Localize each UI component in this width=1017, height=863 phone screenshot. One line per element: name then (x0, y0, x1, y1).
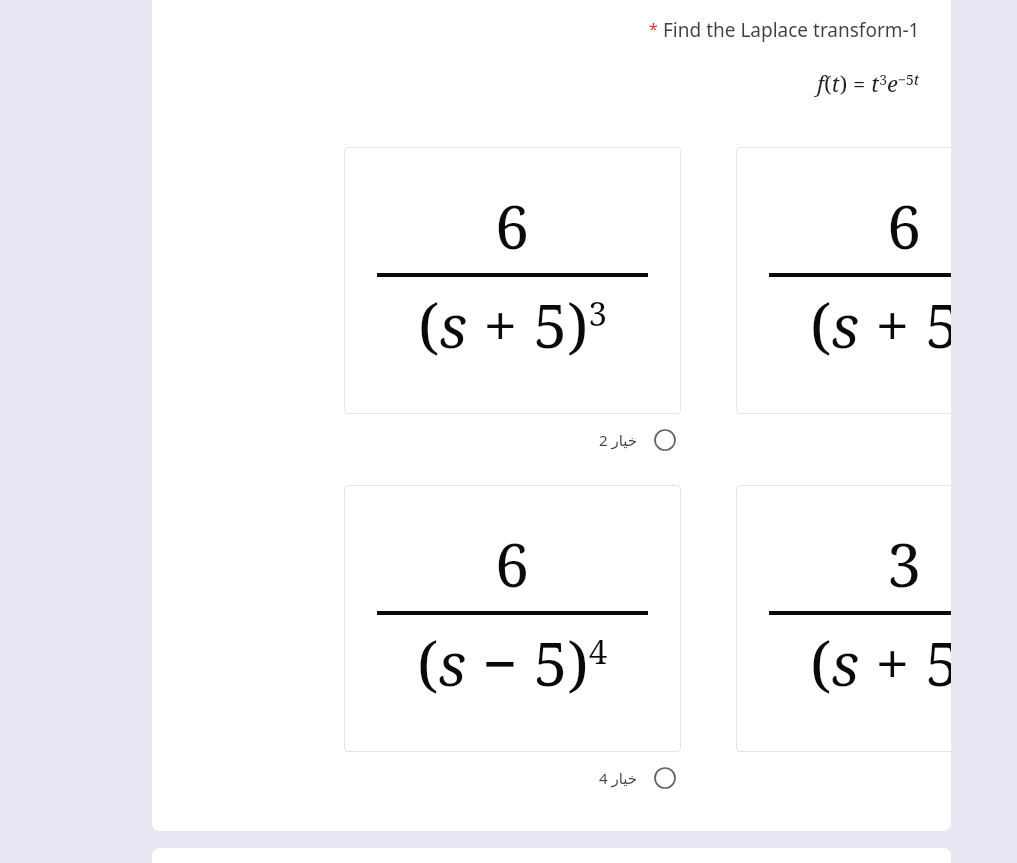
staticText: خيار 4 (599, 768, 638, 788)
staticText: 6 (495, 522, 530, 605)
staticText: * (649, 18, 658, 40)
button[interactable]: 6 (736, 147, 951, 414)
staticText: (s + 5)3 (810, 621, 951, 704)
staticText: 6 (495, 184, 530, 267)
button[interactable]: خيار 4 (344, 763, 681, 793)
staticText: 3 (887, 522, 922, 605)
button[interactable]: خيار 2 (344, 425, 681, 455)
staticText: (s + 5)3 (418, 283, 607, 366)
staticText: (s + 5)4 (810, 283, 951, 366)
staticText: (s − 5)4 (417, 621, 608, 704)
button[interactable]: 6 (344, 485, 681, 752)
other: Select خيار 4 (650, 763, 680, 793)
staticText: Find the Laplace transform-1 (663, 17, 920, 43)
staticText: خيار 2 (599, 430, 638, 450)
button[interactable]: 3 (736, 485, 951, 752)
staticText: 6 (887, 184, 922, 267)
button[interactable]: 6 (344, 147, 681, 414)
other: Select خيار 2 (650, 425, 680, 455)
staticText: f(t) = t3e−5t (817, 68, 920, 98)
